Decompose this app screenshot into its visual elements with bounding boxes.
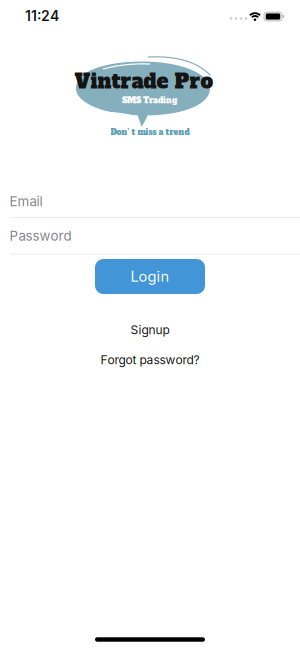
button[interactable]: Email xyxy=(0,186,300,216)
staticText: Email xyxy=(9,193,42,209)
staticText: 11:24 xyxy=(25,7,59,24)
staticText: Login xyxy=(130,268,169,285)
button[interactable]: Signup xyxy=(130,323,169,337)
button[interactable]: Password xyxy=(0,221,300,251)
staticText: Forgot password? xyxy=(100,353,199,367)
staticText: Vintrade Pro xyxy=(74,68,213,95)
staticText: Don' t miss a trend xyxy=(110,127,189,138)
button[interactable]: Login xyxy=(95,259,205,294)
staticText: Signup xyxy=(130,323,169,337)
button[interactable]: Forgot password? xyxy=(100,353,199,367)
staticText: Password xyxy=(9,228,71,244)
staticText: SMS Trading xyxy=(122,95,177,106)
